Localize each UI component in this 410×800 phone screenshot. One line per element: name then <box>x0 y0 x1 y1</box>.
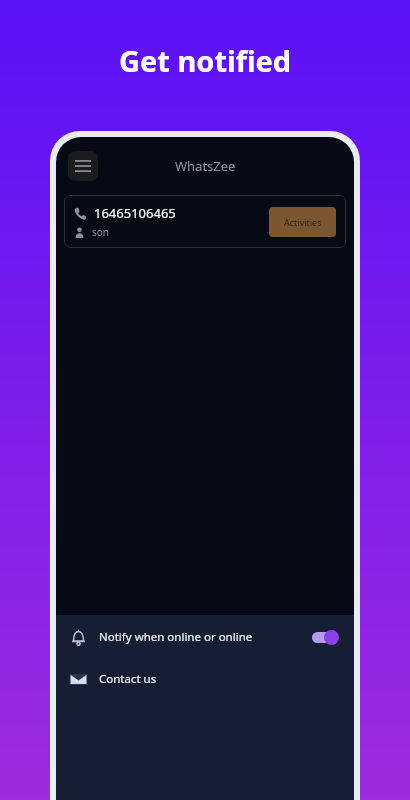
button[interactable]: Contact us <box>56 659 354 699</box>
staticText: Activities <box>284 216 322 228</box>
button[interactable]: Notify when online toggle, on <box>310 629 340 645</box>
staticText: Get notified <box>119 41 292 80</box>
staticText: son <box>92 225 110 239</box>
staticText: Contact us <box>99 671 157 687</box>
button[interactable]: Notify when online or online <box>56 615 354 659</box>
staticText: 16465106465 <box>94 204 176 222</box>
button[interactable]: Open menu <box>68 151 98 181</box>
staticText: Notify when online or online <box>99 629 310 645</box>
button[interactable]: Activities <box>269 207 336 237</box>
button[interactable]: 16465106465 <box>64 195 346 248</box>
staticText: WhatsZee <box>175 157 236 175</box>
